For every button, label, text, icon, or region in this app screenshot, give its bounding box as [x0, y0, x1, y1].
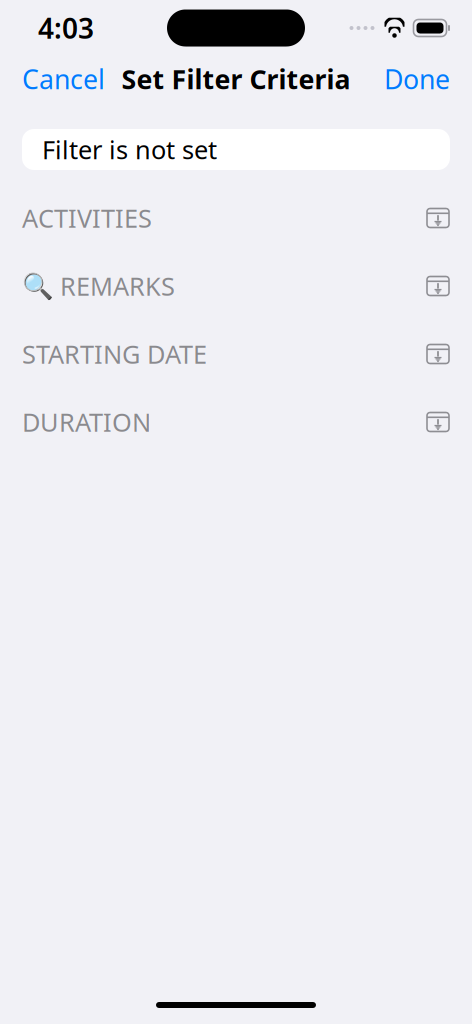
staticText: Filter is not set — [42, 133, 217, 166]
staticText: 4:03 — [38, 9, 94, 47]
staticText: STARTING DATE — [22, 337, 207, 371]
button[interactable]: 🔍 — [0, 271, 472, 301]
staticText: DURATION — [22, 405, 151, 439]
button[interactable]: Cancel — [0, 53, 127, 105]
staticText: Cancel — [22, 61, 105, 97]
staticText: Done — [384, 61, 450, 97]
button[interactable]: ACTIVITIES — [0, 203, 472, 233]
button[interactable]: DURATION — [0, 407, 472, 437]
staticText: REMARKS — [60, 269, 175, 303]
button[interactable]: Done — [362, 53, 472, 105]
staticText: Set Filter Criteria — [121, 61, 350, 97]
button[interactable]: STARTING DATE — [0, 339, 472, 369]
staticText: 🔍 — [22, 271, 54, 300]
staticText: ACTIVITIES — [22, 201, 152, 235]
